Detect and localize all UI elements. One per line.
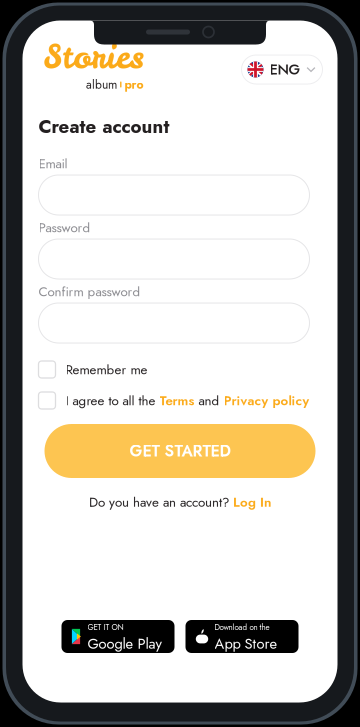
staticText: pro [124, 76, 143, 93]
staticText: album [86, 76, 117, 93]
staticText: Download on the [214, 621, 269, 633]
staticText: Remember me [65, 360, 147, 379]
button[interactable]: I agree to all the [38, 392, 309, 409]
button[interactable]: GET STARTED [44, 424, 315, 478]
staticText: GET STARTED [129, 439, 230, 462]
staticText: Terms [159, 391, 194, 410]
staticText: Confirm password [38, 282, 140, 301]
staticText: Log In [233, 492, 271, 512]
staticText: and [194, 391, 223, 410]
staticText: Google Play [87, 633, 161, 654]
staticText: Stories [43, 34, 143, 79]
button[interactable]: Language: English [241, 55, 322, 84]
button[interactable]: Get it on Google Play [61, 620, 174, 653]
staticText: ENG [269, 59, 300, 80]
staticText: GET IT ON [87, 621, 123, 633]
staticText: Privacy policy [223, 391, 309, 410]
staticText: Do you have an account? [89, 492, 233, 512]
staticText: I agree to all the [65, 391, 159, 410]
staticText: Create account [38, 113, 169, 140]
button[interactable]: Log In [233, 492, 271, 512]
button[interactable]: Remember me [38, 361, 309, 378]
staticText: App Store [214, 633, 277, 654]
button[interactable]: Download on the App Store [185, 620, 298, 653]
staticText: Email [38, 154, 67, 173]
staticText: Password [38, 218, 90, 237]
